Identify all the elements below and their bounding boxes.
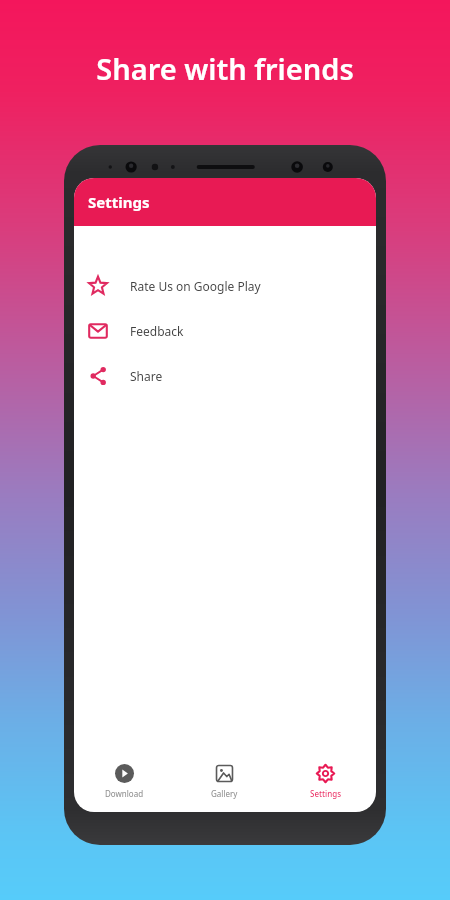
button[interactable]: Gallery [174,752,275,810]
button[interactable]: Settings [275,752,376,810]
staticText: Feedback [130,323,184,339]
staticText: Share with friends [0,49,450,88]
staticText: Gallery [211,788,238,799]
staticText: Share [130,368,163,384]
button[interactable]: Rate Us on Google Play [74,263,376,308]
button[interactable]: Download [74,752,174,810]
button[interactable]: Share [74,353,376,398]
staticText: Download [105,788,144,799]
button[interactable]: Feedback [74,308,376,353]
other: Download [115,764,134,783]
staticText: Rate Us on Google Play [130,278,261,294]
staticText: Settings [310,788,342,799]
other: Settings [316,764,335,783]
other: Gallery [215,764,234,783]
staticText: Settings [88,192,150,212]
